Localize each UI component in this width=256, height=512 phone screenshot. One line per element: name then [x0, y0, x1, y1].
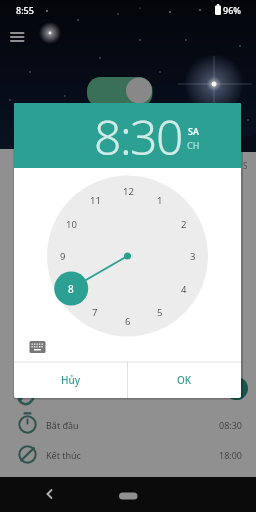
- button[interactable]: Hủy: [14, 362, 127, 398]
- staticText: SA: [188, 125, 199, 137]
- staticText: 8:55: [16, 4, 34, 16]
- staticText: 10: [66, 218, 77, 231]
- staticText: 08:30: [219, 419, 243, 431]
- staticText: 5: [157, 306, 163, 319]
- button[interactable]: [24, 335, 50, 359]
- staticText: 12: [123, 185, 134, 198]
- button[interactable]: Kết thúc: [0, 442, 256, 468]
- staticText: Bắt đầu: [46, 419, 79, 431]
- staticText: 18:00: [219, 449, 243, 461]
- staticText: 9: [60, 250, 66, 263]
- staticText: OK: [177, 373, 192, 387]
- staticText: 3: [190, 250, 196, 263]
- button[interactable]: [6, 28, 28, 42]
- button[interactable]: Bắt đầu: [0, 412, 256, 438]
- button[interactable]: SA: [182, 124, 204, 137]
- staticText: 4: [181, 283, 187, 296]
- staticText: 2: [181, 218, 187, 231]
- staticText: CH: [187, 139, 200, 151]
- button[interactable]: [116, 487, 140, 505]
- staticText: 7: [92, 306, 98, 319]
- staticText: Kết thúc: [46, 449, 81, 461]
- button[interactable]: OK: [127, 362, 241, 398]
- staticText: 8:30: [94, 104, 182, 169]
- staticText: 96%: [223, 4, 241, 16]
- staticText: 1: [157, 194, 163, 207]
- button[interactable]: CH: [182, 138, 204, 151]
- staticText: Hủy: [61, 373, 81, 387]
- button[interactable]: [38, 483, 62, 505]
- staticText: S: [243, 160, 248, 171]
- staticText: 8: [68, 282, 74, 296]
- staticText: 6: [125, 315, 131, 328]
- staticText: 11: [90, 194, 101, 207]
